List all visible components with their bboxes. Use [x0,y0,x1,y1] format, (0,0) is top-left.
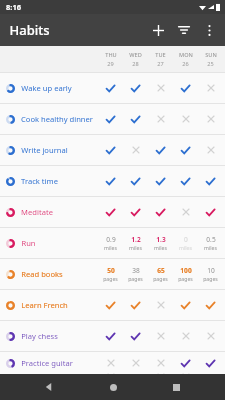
button[interactable]: Completed [123,290,148,320]
other: Not completed [208,333,214,339]
other: Completed [106,177,115,186]
button[interactable]: Completed [123,197,148,227]
button[interactable]: 38 [123,259,148,289]
button[interactable]: Not completed [173,104,198,134]
button[interactable]: Not completed [198,135,223,165]
button[interactable]: Completed [98,135,123,165]
button[interactable]: Not completed [123,352,148,374]
other: Completed [106,84,115,93]
button[interactable]: Completed [148,135,173,165]
staticText: Run [21,238,36,248]
button[interactable]: Not completed [198,73,223,103]
button[interactable]: 0.9 [98,228,123,258]
staticText: Habits [9,21,50,39]
button[interactable]: Cook healthy dinner [0,104,225,135]
button[interactable]: Completed [123,321,148,351]
button[interactable]: Completed [98,166,123,196]
button[interactable]: Recent apps [161,374,191,400]
button[interactable]: Completed [98,321,123,351]
staticText: SUN [205,51,217,59]
button[interactable]: Completed [98,73,123,103]
button[interactable]: Meditate [0,197,225,228]
button[interactable]: Completed [123,104,148,134]
button[interactable]: Learn French [0,290,225,321]
button[interactable]: Completed [198,197,223,227]
button[interactable]: Not completed [173,197,198,227]
button[interactable]: Completed [98,290,123,320]
other: Not completed [158,116,164,122]
button[interactable]: Filter [171,17,197,43]
button[interactable]: Not completed [148,73,173,103]
staticText: miles [104,244,117,251]
staticText: Meditate [21,207,53,217]
other: Completed [131,301,140,310]
staticText: miles [179,244,192,251]
button[interactable]: Practice guitar [0,352,225,374]
button[interactable]: 50 [98,259,123,289]
button[interactable]: Back [34,374,64,400]
button[interactable]: Wake up early [0,73,225,104]
staticText: 26 [182,60,189,68]
button[interactable]: Completed [173,166,198,196]
button[interactable]: 1.3 [148,228,173,258]
staticText: 1.2 [131,235,141,244]
button[interactable]: Write journal [0,135,225,166]
button[interactable]: Completed [98,197,123,227]
staticText: 25 [207,60,214,68]
other: Not completed [158,360,164,366]
button[interactable]: Completed [173,352,198,374]
button[interactable]: Completed [198,166,223,196]
button[interactable]: Track time [0,166,225,197]
button[interactable]: 100 [173,259,198,289]
button[interactable]: Not completed [198,104,223,134]
button[interactable]: Completed [173,135,198,165]
button[interactable]: Not completed [173,321,198,351]
button[interactable]: Play chess [0,321,225,352]
other: Completed [106,146,115,155]
other: Completed [206,301,215,310]
button[interactable]: Completed [123,73,148,103]
button[interactable]: Completed [173,290,198,320]
button[interactable]: Not completed [148,290,173,320]
staticText: 28 [132,60,139,68]
other: Not completed [208,116,214,122]
other: Completed [131,84,140,93]
button[interactable]: Not completed [148,321,173,351]
other: Not completed [108,360,114,366]
button[interactable]: Completed [173,73,198,103]
button[interactable]: Completed [148,166,173,196]
staticText: TUE [155,51,166,59]
staticText: Learn French [21,300,68,310]
staticText: 8:16 [6,2,21,12]
button[interactable]: Run [0,228,225,259]
button[interactable]: Not completed [198,321,223,351]
button[interactable]: 0 [173,228,198,258]
button[interactable]: Read books [0,259,225,290]
button[interactable]: More options [197,18,221,42]
button[interactable]: Add habit [145,17,171,43]
staticText: 1.3 [156,235,166,244]
button[interactable]: 10 [198,259,223,289]
button[interactable]: 65 [148,259,173,289]
button[interactable]: Completed [148,197,173,227]
staticText: miles [154,244,167,251]
button[interactable]: Not completed [98,352,123,374]
staticText: 0 [184,235,188,244]
button[interactable]: Not completed [148,104,173,134]
button[interactable]: Completed [198,352,223,374]
other: Completed [206,208,215,217]
staticText: pages [103,275,118,282]
button[interactable]: 1.2 [123,228,148,258]
other: Completed [181,146,190,155]
other: Completed [181,359,190,368]
button[interactable]: Home [98,374,128,400]
staticText: miles [129,244,142,251]
button[interactable]: Completed [98,104,123,134]
button[interactable]: Completed [123,166,148,196]
other: Completed [106,115,115,124]
other: Not completed [158,85,164,91]
button[interactable]: Not completed [123,135,148,165]
button[interactable]: Not completed [148,352,173,374]
button[interactable]: 0.5 [198,228,223,258]
button[interactable]: Completed [198,290,223,320]
